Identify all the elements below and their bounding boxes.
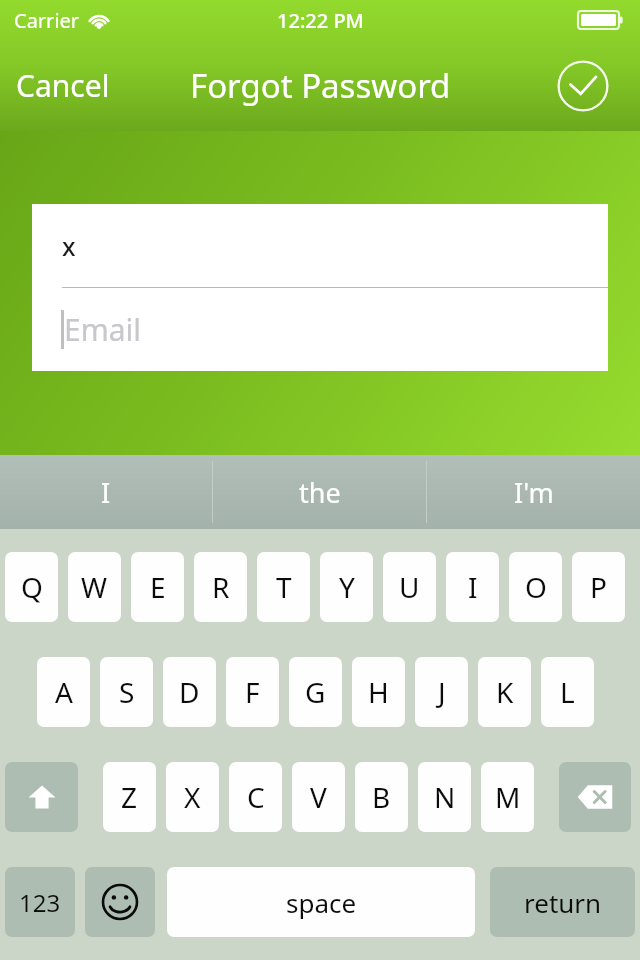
button[interactable]: Z <box>103 762 156 832</box>
button[interactable]: N <box>418 762 471 832</box>
button[interactable]: P <box>572 552 625 622</box>
staticText: H <box>368 673 389 711</box>
staticText: x <box>62 229 76 263</box>
button[interactable]: I'm <box>427 455 640 529</box>
button[interactable]: I <box>446 552 499 622</box>
button[interactable]: return <box>490 867 635 937</box>
staticText: O <box>525 568 547 606</box>
button[interactable]: Submit <box>557 60 609 112</box>
staticText: G <box>305 673 326 711</box>
staticText: J <box>438 673 446 711</box>
staticText: E <box>150 568 166 606</box>
staticText: I <box>468 568 478 606</box>
staticText: P <box>590 568 607 606</box>
staticText: D <box>179 673 200 711</box>
staticText: S <box>119 673 135 711</box>
staticText: T <box>276 568 292 606</box>
staticText: return <box>524 885 602 920</box>
staticText: Email <box>64 309 142 350</box>
button[interactable]: C <box>229 762 282 832</box>
button[interactable]: 123 <box>5 867 75 937</box>
staticText: U <box>399 568 420 606</box>
button[interactable]: M <box>481 762 534 832</box>
button[interactable]: Shift <box>5 762 78 832</box>
staticText: A <box>55 673 73 711</box>
button[interactable]: T <box>257 552 310 622</box>
staticText: K <box>496 673 514 711</box>
button[interactable]: O <box>509 552 562 622</box>
button[interactable]: Cancel <box>8 57 118 114</box>
button[interactable]: Email <box>32 288 608 371</box>
button[interactable]: B <box>355 762 408 832</box>
button[interactable]: X <box>166 762 219 832</box>
button[interactable]: E <box>131 552 184 622</box>
staticText: W <box>81 568 108 606</box>
button[interactable]: A <box>37 657 90 727</box>
staticText: Y <box>339 568 355 606</box>
staticText: M <box>495 778 521 816</box>
button[interactable]: space <box>167 867 475 937</box>
staticText: I'm <box>514 474 554 511</box>
staticText: Forgot Password <box>190 63 451 108</box>
button[interactable]: W <box>68 552 121 622</box>
button[interactable]: the <box>213 455 426 529</box>
button[interactable]: K <box>478 657 531 727</box>
staticText: space <box>286 885 357 920</box>
staticText: F <box>245 673 260 711</box>
staticText: X <box>184 778 201 816</box>
staticText: the <box>299 474 341 511</box>
staticText: N <box>434 778 456 816</box>
staticText: 123 <box>19 886 61 919</box>
button[interactable]: F <box>226 657 279 727</box>
button[interactable]: D <box>163 657 216 727</box>
staticText: Cancel <box>16 65 110 106</box>
button[interactable]: Q <box>5 552 58 622</box>
staticText: R <box>212 568 230 606</box>
staticText: I <box>101 474 111 511</box>
staticText: B <box>372 778 391 816</box>
button[interactable]: G <box>289 657 342 727</box>
button[interactable]: x <box>32 204 608 287</box>
button[interactable]: L <box>541 657 594 727</box>
button[interactable]: J <box>415 657 468 727</box>
button[interactable]: U <box>383 552 436 622</box>
button[interactable]: Y <box>320 552 373 622</box>
button[interactable]: I <box>0 455 212 529</box>
button[interactable]: Emoji <box>85 867 155 937</box>
staticText: Z <box>121 778 138 816</box>
staticText: C <box>247 778 265 816</box>
button[interactable]: Backspace <box>559 762 631 832</box>
button[interactable]: R <box>194 552 247 622</box>
button[interactable]: S <box>100 657 153 727</box>
staticText: Q <box>21 568 43 606</box>
staticText: Carrier <box>14 7 80 34</box>
staticText: 12:22 PM <box>277 7 364 34</box>
button[interactable]: V <box>292 762 345 832</box>
staticText: L <box>560 673 575 711</box>
staticText: V <box>310 778 327 816</box>
button[interactable]: H <box>352 657 405 727</box>
